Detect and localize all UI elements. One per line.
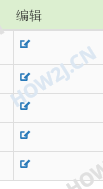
staticText: HOW2J.CN: [0, 15, 9, 88]
button[interactable]: Edit: [0, 152, 103, 180]
button[interactable]: Edit: [0, 65, 103, 93]
other: Edit: [20, 39, 31, 49]
button[interactable]: Edit: [0, 94, 103, 122]
staticText: HOW2J.CN: [61, 129, 103, 189]
other: Edit: [20, 130, 31, 140]
staticText: HOW2J.CN: [5, 40, 101, 113]
staticText: 编辑: [16, 7, 42, 23]
button[interactable]: Edit: [0, 31, 103, 64]
other: Edit: [20, 101, 31, 111]
other: Edit: [20, 72, 31, 82]
button[interactable]: Edit: [0, 123, 103, 151]
other: Edit: [20, 159, 31, 169]
